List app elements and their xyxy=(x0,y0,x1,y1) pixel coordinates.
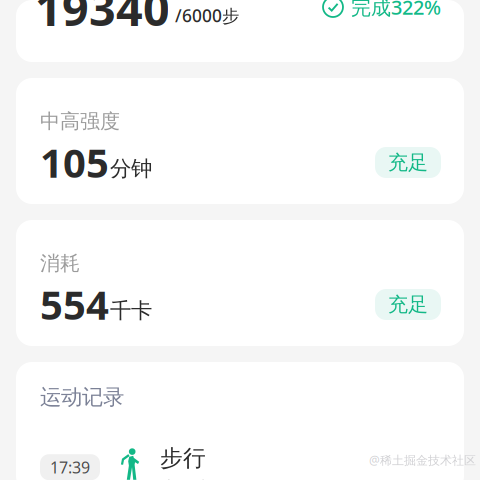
button[interactable]: 充足 xyxy=(375,147,441,178)
staticText: @稀土掘金技术社区 xyxy=(369,452,476,468)
staticText: 千卡 xyxy=(110,298,152,324)
button[interactable]: 17:39 xyxy=(16,440,464,480)
staticText: 完成322% xyxy=(351,0,441,20)
staticText: 17:39 xyxy=(50,457,90,478)
staticText: /6000步 xyxy=(175,4,239,27)
staticText: 步行 xyxy=(160,444,206,472)
button[interactable]: 充足 xyxy=(375,289,441,320)
staticText: 分钟 xyxy=(110,156,152,182)
staticText: 19340 xyxy=(35,0,170,39)
staticText: 中高强度 xyxy=(40,109,120,134)
staticText: 充足 xyxy=(388,292,428,317)
staticText: 105 xyxy=(40,136,109,189)
staticText: 554 xyxy=(40,278,109,331)
staticText: 运动记录 xyxy=(40,384,124,410)
staticText: 消耗 xyxy=(40,251,80,276)
staticText: 充足 xyxy=(388,150,428,175)
